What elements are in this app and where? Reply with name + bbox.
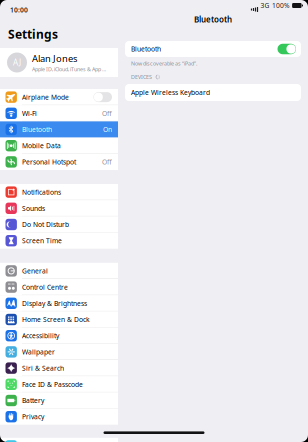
button[interactable]: Bluetooth [0,121,118,138]
staticText: General [22,266,48,275]
staticText: Now discoverable as “iPad”. [131,60,197,67]
button[interactable]: Apple Wireless Keyboard [118,84,308,101]
staticText: Bluetooth [22,125,52,134]
button[interactable]: Notifications [0,184,118,200]
staticText: Settings [8,26,58,42]
staticText: Alan Jones [32,52,77,65]
staticText: Off [102,109,112,118]
button[interactable]: General [0,263,118,279]
staticText: Apple Wireless Keyboard [131,88,210,97]
staticText: Battery [22,396,44,405]
button[interactable]: Control Centre [0,279,118,295]
staticText: DEVICES [131,73,152,81]
button[interactable]: AJ [0,48,118,77]
staticText: Do Not Disturb [22,220,69,229]
button[interactable]: Privacy [0,409,118,425]
staticText: Screen Time [22,236,62,245]
button[interactable]: Wallpaper [0,344,118,360]
button[interactable]: Wi-Fi [0,105,118,121]
staticText: Sounds [22,204,45,213]
button[interactable]: Do Not Disturb [0,216,118,233]
staticText: Bluetooth [131,45,161,53]
staticText: Siri & Search [22,364,64,373]
staticText: Notifications [22,188,61,197]
button[interactable]: Mobile Data [0,138,118,154]
button[interactable]: Screen Time [0,233,118,249]
staticText: Home Screen & Dock [22,315,90,324]
button[interactable]: Display & Brightness [0,295,118,311]
button[interactable]: Airplane Mode [0,89,118,105]
button[interactable]: Sounds [0,200,118,216]
staticText: 3G [261,1,270,10]
staticText: 100% [272,1,290,10]
staticText: Display & Brightness [22,299,87,308]
staticText: Off [102,157,112,166]
button[interactable]: Battery [0,392,118,409]
staticText: Wallpaper [22,347,55,356]
staticText: Mobile Data [22,141,61,150]
staticText: Airplane Mode [22,93,69,102]
button[interactable]: iTunes & App Store [0,438,118,442]
staticText: Personal Hotspot [22,157,76,166]
staticText: AJ [13,57,21,68]
staticText: Bluetooth [194,14,232,25]
staticText: Apple ID, iCloud, iTunes & App St… [32,66,106,73]
staticText: Accessibility [22,331,59,340]
staticText: 10:00 [10,6,28,14]
staticText: Control Centre [22,283,68,292]
staticText: On [103,125,112,134]
button[interactable]: Accessibility [0,328,118,344]
button[interactable]: Siri & Search [0,360,118,376]
staticText: Wi-Fi [22,109,37,118]
button[interactable]: Personal Hotspot [0,154,118,170]
button[interactable]: Face ID & Passcode [0,376,118,392]
staticText: Privacy [22,412,44,421]
button[interactable]: Home Screen & Dock [0,311,118,328]
staticText: Face ID & Passcode [22,380,83,389]
